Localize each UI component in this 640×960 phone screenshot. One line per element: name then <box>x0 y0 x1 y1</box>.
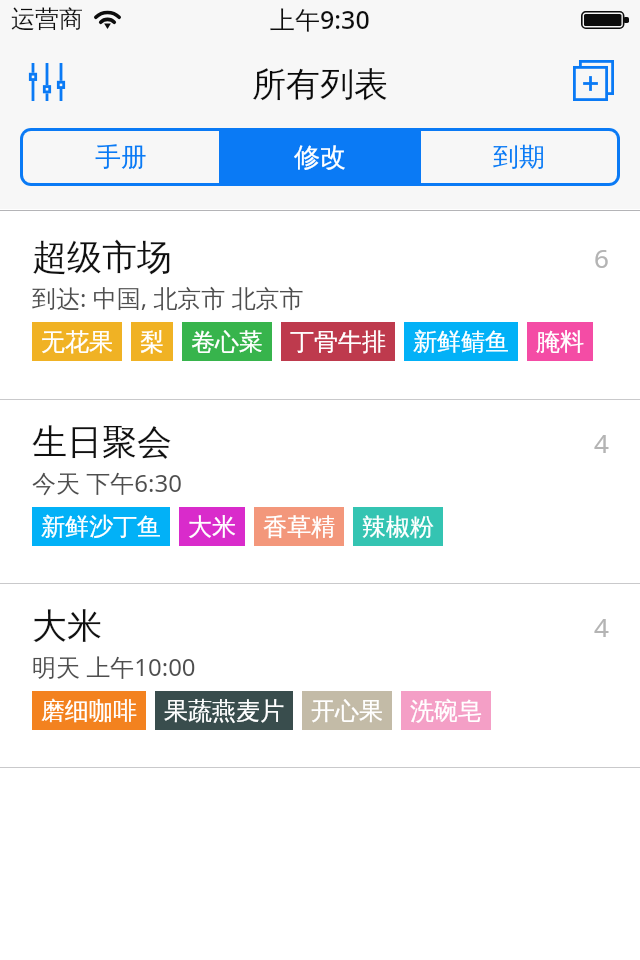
staticText: 上午9:30 <box>270 2 370 36</box>
button[interactable]: 生日聚会 <box>0 400 640 583</box>
button[interactable]: 超级市场 <box>0 211 640 399</box>
staticText: 辣椒粉 <box>362 512 434 542</box>
staticText: 到达: 中国, 北京市 北京市 <box>32 281 304 314</box>
staticText: 超级市场 <box>32 235 172 279</box>
staticText: 丁骨牛排 <box>290 327 386 357</box>
staticText: 明天 上午10:00 <box>32 650 196 683</box>
staticText: 卷心菜 <box>191 327 263 357</box>
button[interactable]: New list <box>564 52 622 108</box>
staticText: 开心果 <box>311 696 383 726</box>
staticText: 4 <box>594 609 609 644</box>
staticText: 果蔬燕麦片 <box>164 696 284 726</box>
staticText: 大米 <box>188 512 236 542</box>
button[interactable]: 修改 <box>222 131 418 183</box>
staticText: 香草精 <box>263 512 335 542</box>
staticText: 梨 <box>140 327 164 357</box>
staticText: 磨细咖啡 <box>41 696 137 726</box>
staticText: 新鲜鲭鱼 <box>413 327 509 357</box>
button[interactable]: 大米 <box>0 584 640 767</box>
button[interactable]: 手册 <box>23 131 219 183</box>
staticText: 腌料 <box>536 327 584 357</box>
staticText: 生日聚会 <box>32 420 172 464</box>
staticText: 所有列表 <box>252 63 388 106</box>
staticText: 大米 <box>32 604 102 648</box>
staticText: 修改 <box>294 141 346 174</box>
staticText: 新鲜沙丁鱼 <box>41 512 161 542</box>
staticText: 手册 <box>95 141 147 174</box>
staticText: 洗碗皂 <box>410 696 482 726</box>
staticText: 到期 <box>493 141 545 174</box>
button[interactable]: Filters <box>15 54 79 110</box>
button[interactable]: 到期 <box>421 131 617 183</box>
staticText: 无花果 <box>41 327 113 357</box>
staticText: 6 <box>594 240 609 275</box>
staticText: 4 <box>594 425 609 460</box>
staticText: 今天 下午6:30 <box>32 466 182 499</box>
staticText: 运营商 <box>11 4 83 34</box>
